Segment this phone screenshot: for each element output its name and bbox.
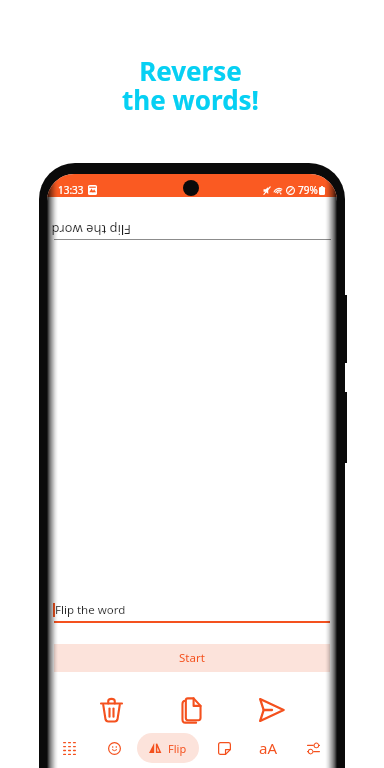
button[interactable]: nav	[101, 735, 127, 761]
button[interactable]: nav	[300, 735, 326, 761]
button[interactable]: nav	[211, 735, 237, 761]
button[interactable]: Send	[252, 691, 290, 729]
staticText: Start	[179, 650, 205, 666]
button[interactable]: Text style	[255, 735, 281, 761]
button[interactable]: Flip the word	[52, 601, 330, 618]
staticText: Flip the word	[55, 602, 126, 618]
button[interactable]: Start	[54, 644, 330, 672]
button[interactable]: Delete	[92, 691, 130, 729]
staticText: Flip the word	[51, 221, 131, 239]
button[interactable]: Flip	[137, 733, 199, 763]
staticText: 79%	[298, 183, 318, 197]
staticText: 13:33	[58, 183, 84, 197]
button[interactable]: Copy	[172, 691, 210, 729]
staticText: Reverse the words!	[122, 53, 259, 117]
staticText: aA	[259, 738, 278, 758]
staticText: Flip	[168, 741, 187, 756]
button[interactable]: nav	[56, 735, 82, 761]
